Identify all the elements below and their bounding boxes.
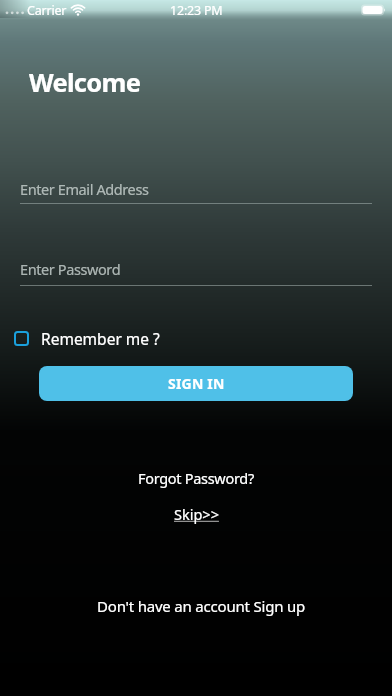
staticText: Don't have an account Sign up	[97, 596, 306, 616]
staticText: Forgot Password?	[138, 468, 254, 488]
staticText: SIGN IN	[168, 374, 225, 393]
button[interactable]: SIGN IN	[39, 366, 353, 401]
staticText: Carrier	[27, 2, 67, 19]
button[interactable]: Enter Password	[20, 252, 372, 286]
button[interactable]: Remember me ?	[14, 328, 160, 349]
button[interactable]: Skip>>	[174, 504, 219, 524]
staticText: Skip>>	[174, 504, 219, 524]
button[interactable]: Enter Email Address	[20, 170, 372, 204]
staticText: Remember me ?	[41, 328, 160, 349]
staticText: Enter Email Address	[20, 179, 149, 199]
staticText: Enter Password	[20, 259, 121, 279]
staticText: 12:23 PM	[170, 2, 223, 19]
button[interactable]: Don't have an account Sign up	[97, 596, 306, 616]
staticText: Welcome	[29, 65, 141, 100]
button[interactable]: Forgot Password?	[138, 468, 254, 488]
